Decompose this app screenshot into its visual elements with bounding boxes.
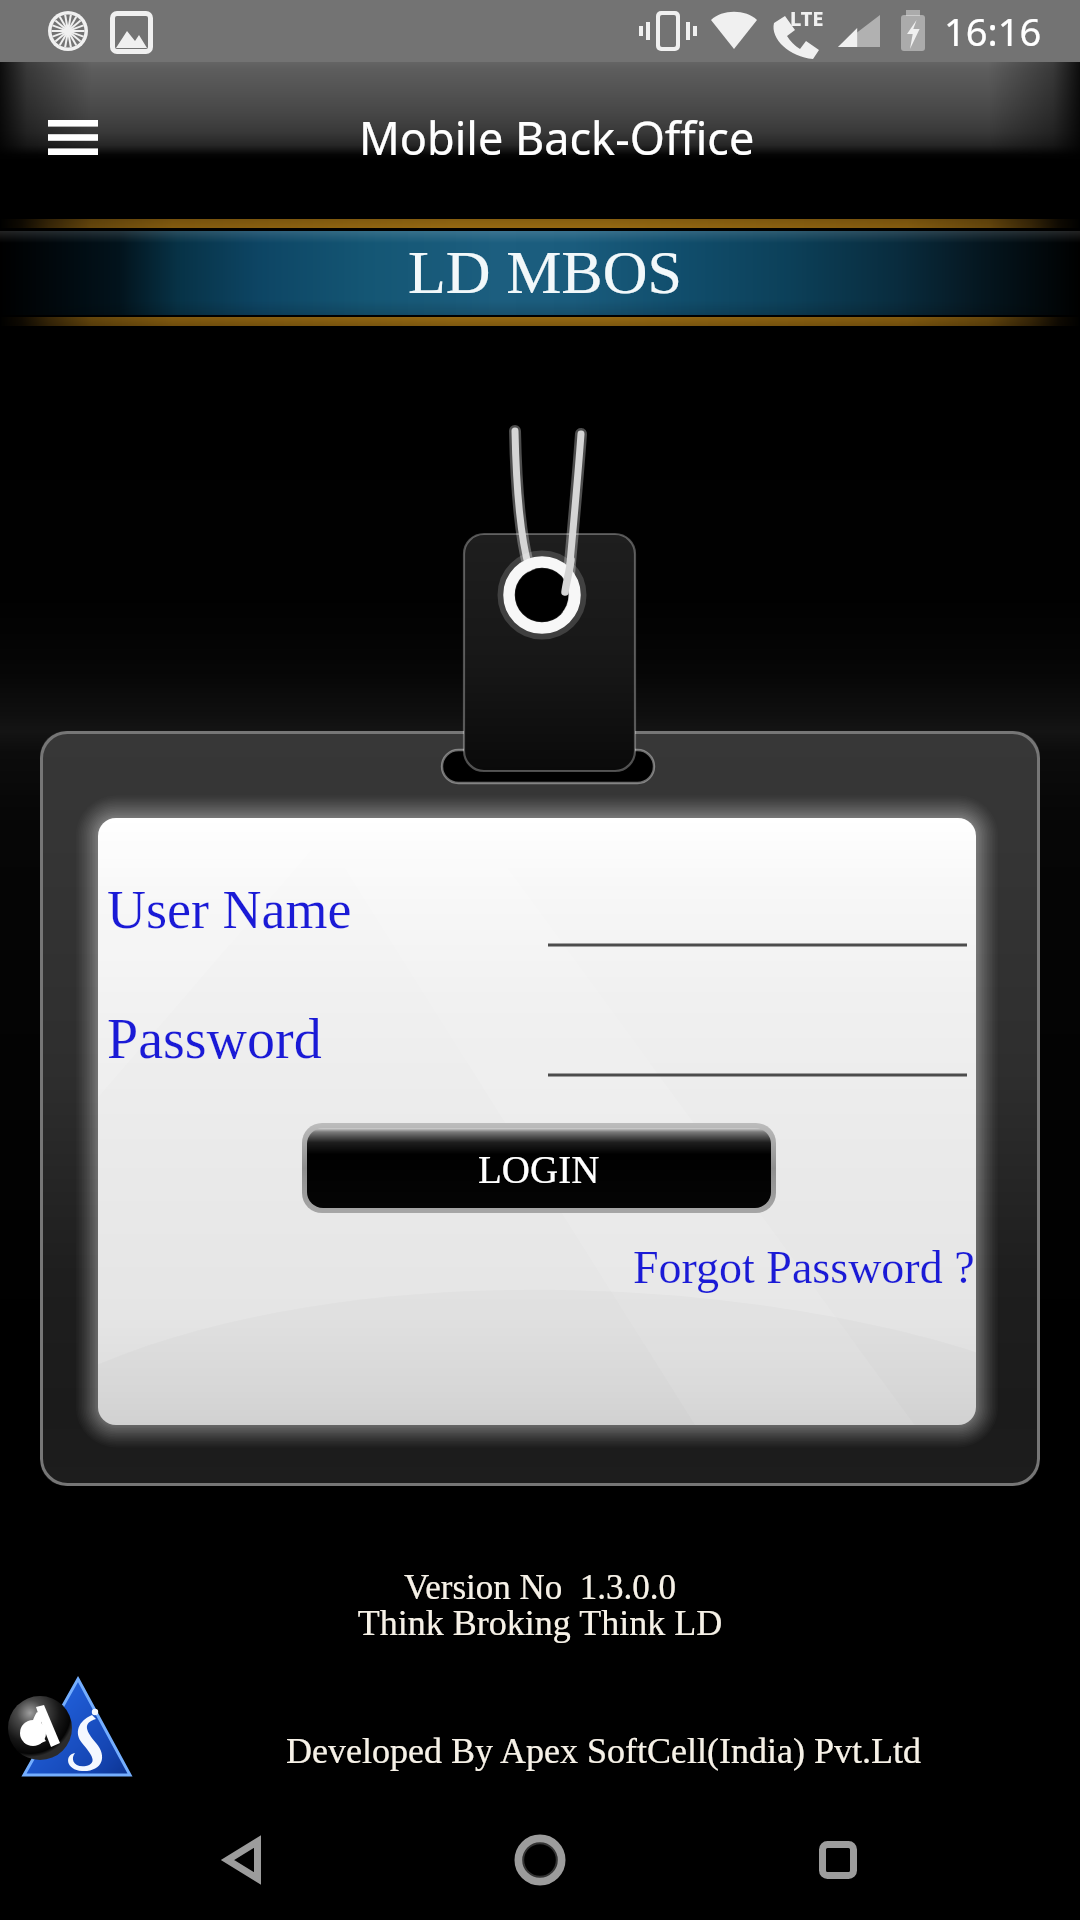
staticText: Think Broking Think LD (0, 1603, 1080, 1643)
staticText: LOGIN (478, 1148, 600, 1191)
button[interactable]: Forgot Password ? (625, 1233, 976, 1301)
button[interactable]: Home (480, 1807, 600, 1913)
button[interactable]: LOGIN (307, 1128, 771, 1208)
button[interactable]: Back (182, 1810, 302, 1910)
staticText: User Name (107, 880, 352, 940)
staticText: LD MBOS (408, 238, 682, 307)
button[interactable]: Password (98, 996, 538, 1082)
button[interactable]: Open navigation drawer (20, 94, 126, 180)
staticText: Mobile Back-Office (359, 107, 755, 168)
button[interactable]: User Name (98, 867, 538, 953)
staticText: 16:16 (944, 5, 1042, 57)
staticText: Version No 1.3.0.0 (0, 1568, 1080, 1607)
staticText: Forgot Password ? (633, 1242, 975, 1293)
staticText: Password (107, 1008, 322, 1070)
staticText: LTE (790, 5, 824, 32)
staticText: Developed By Apex SoftCell(India) Pvt.Lt… (286, 1731, 921, 1771)
button[interactable]: Recent apps (778, 1810, 898, 1910)
